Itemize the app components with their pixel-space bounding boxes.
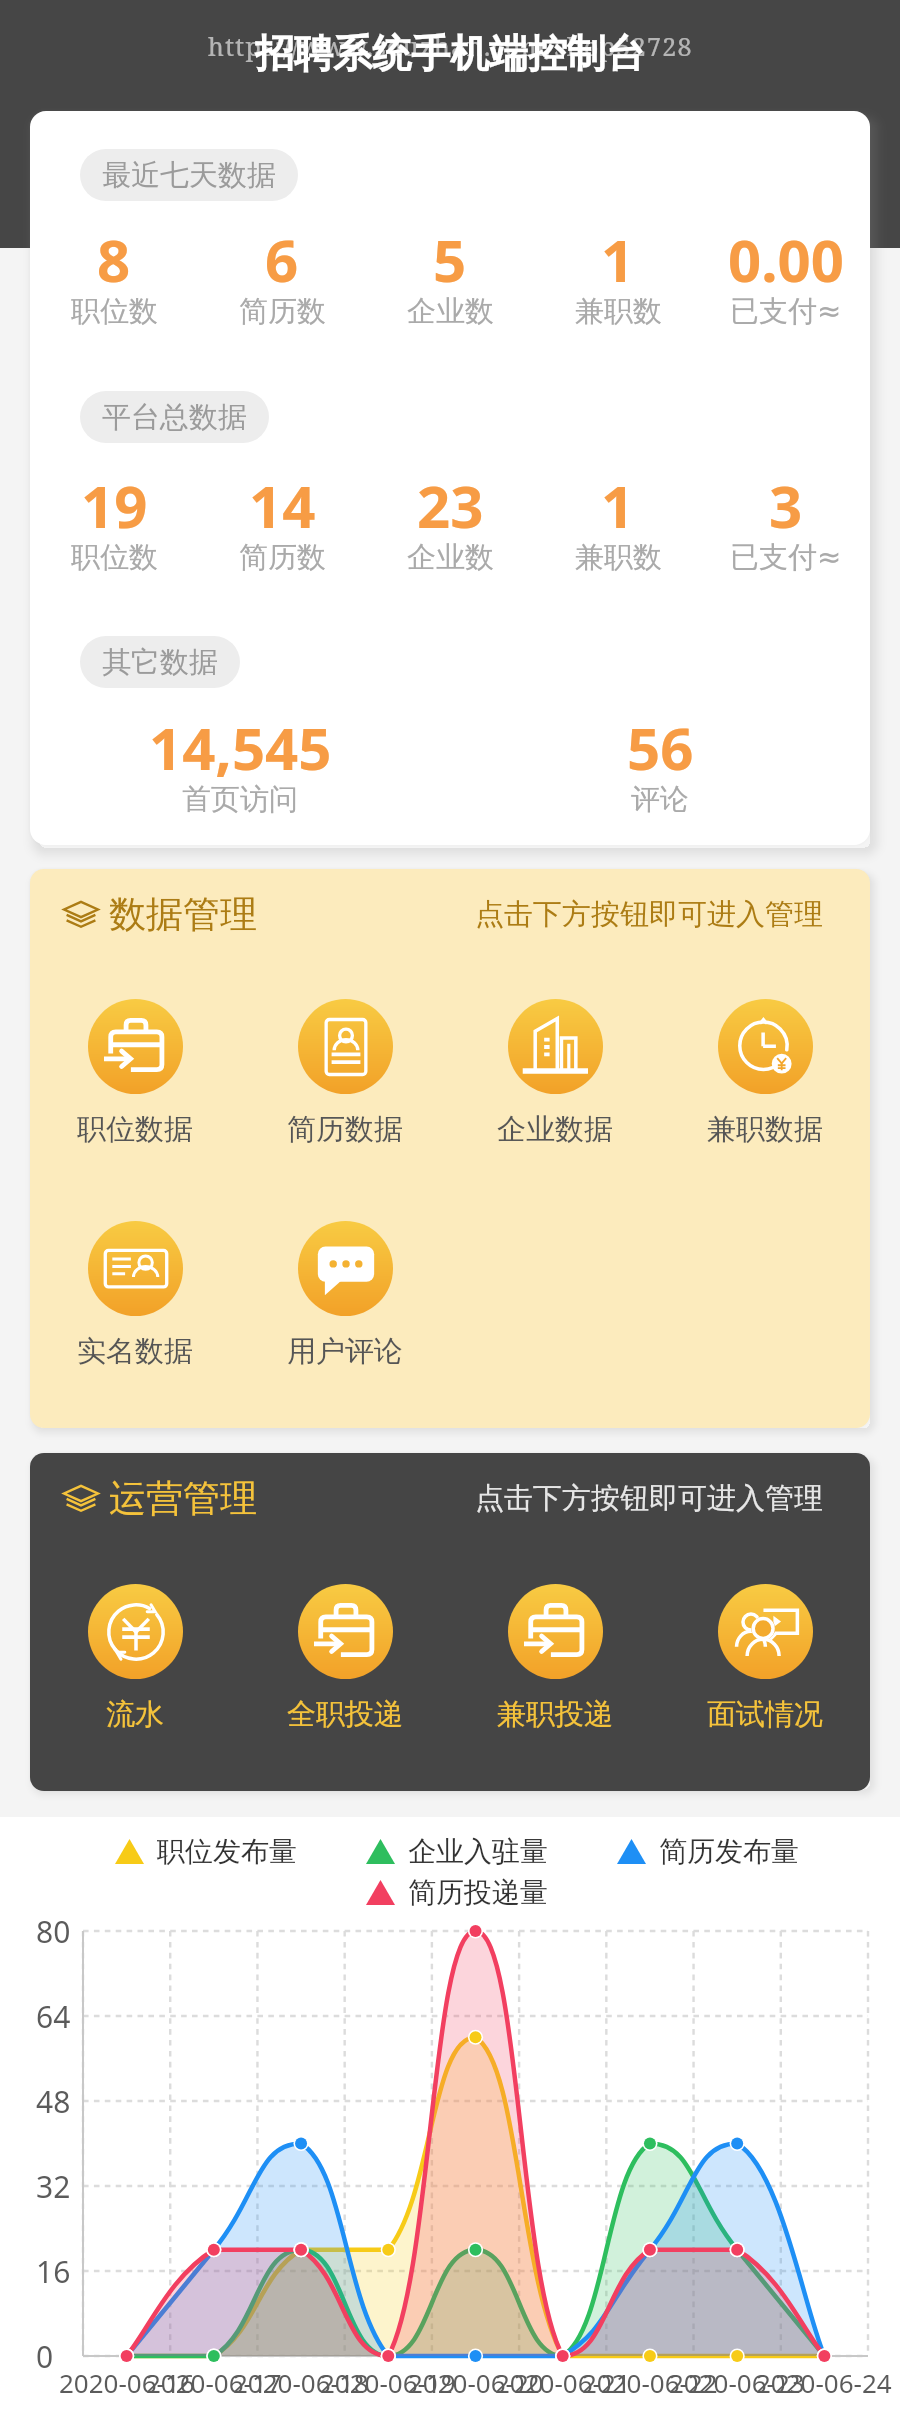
staticText: 6	[265, 220, 299, 299]
staticText: 点击下方按钮即可进入管理	[475, 896, 823, 933]
staticText: 2020-06-17	[146, 2365, 282, 2400]
staticText: 兼职数	[575, 539, 662, 576]
staticText: 平台总数据	[102, 399, 247, 436]
staticText: 2020-06-23	[669, 2365, 805, 2400]
staticText: 企业入驻量	[408, 1834, 548, 1869]
staticText: 3	[769, 466, 803, 545]
staticText: 兼职投递	[497, 1696, 613, 1733]
button[interactable]: 用户评论	[240, 1221, 450, 1370]
staticText: 简历数据	[287, 1111, 403, 1148]
staticText: 2020-06-19	[320, 2365, 456, 2400]
staticText: 首页访问	[182, 781, 298, 818]
button[interactable]: 兼职数据	[660, 999, 870, 1148]
staticText: 1	[601, 466, 635, 545]
staticText: 其它数据	[102, 644, 218, 681]
staticText: 职位数	[71, 293, 158, 330]
staticText: 职位数	[71, 539, 158, 576]
staticText: 最近七天数据	[102, 157, 276, 194]
staticText: 招聘系统手机端控制台	[255, 29, 645, 78]
staticText: 48	[36, 2081, 71, 2122]
staticText: 已支付≈	[730, 293, 842, 330]
staticText: 32	[36, 2166, 71, 2207]
staticText: 14	[249, 466, 316, 545]
staticText: 14,545	[149, 708, 332, 787]
button[interactable]: 职位数据	[30, 999, 240, 1148]
staticText: 2020-06-24	[756, 2365, 892, 2400]
staticText: 兼职数据	[707, 1111, 823, 1148]
staticText: 简历数	[239, 293, 326, 330]
staticText: 数据管理	[109, 891, 257, 938]
staticText: 实名数据	[77, 1333, 193, 1370]
staticText: 简历发布量	[659, 1834, 799, 1869]
staticText: https://www.souzhan.com/shop52728	[208, 29, 693, 63]
staticText: 23	[417, 466, 484, 545]
staticText: 简历数	[239, 539, 326, 576]
staticText: 19	[81, 466, 148, 545]
staticText: 企业数	[407, 293, 494, 330]
button[interactable]: 全职投递	[240, 1584, 450, 1733]
staticText: 1	[601, 220, 635, 299]
button[interactable]: 简历数据	[240, 999, 450, 1148]
staticText: 职位发布量	[157, 1834, 297, 1869]
staticText: 2020-06-22	[582, 2365, 718, 2400]
staticText: 2020-06-21	[495, 2365, 631, 2400]
staticText: 2020-06-20	[408, 2365, 544, 2400]
staticText: 企业数	[407, 539, 494, 576]
staticText: 56	[627, 708, 694, 787]
button[interactable]: 企业数据	[450, 999, 660, 1148]
staticText: 16	[36, 2251, 71, 2292]
button[interactable]: 兼职投递	[450, 1584, 660, 1733]
button[interactable]: 流水	[30, 1584, 240, 1733]
staticText: 0.00	[728, 220, 844, 299]
staticText: 简历投递量	[408, 1875, 548, 1910]
staticText: 5	[433, 220, 467, 299]
staticText: 面试情况	[707, 1696, 823, 1733]
staticText: 评论	[631, 781, 689, 818]
staticText: 兼职数	[575, 293, 662, 330]
staticText: 企业数据	[497, 1111, 613, 1148]
staticText: 2020-06-16	[59, 2365, 195, 2400]
staticText: 2020-06-18	[233, 2365, 369, 2400]
staticText: 运营管理	[109, 1475, 257, 1522]
button[interactable]: 实名数据	[30, 1221, 240, 1370]
staticText: 已支付≈	[730, 539, 842, 576]
staticText: 64	[36, 1996, 71, 2037]
staticText: 0	[36, 2336, 54, 2377]
staticText: 8	[97, 220, 131, 299]
staticText: 80	[36, 1911, 71, 1952]
staticText: 全职投递	[287, 1696, 403, 1733]
staticText: 点击下方按钮即可进入管理	[475, 1480, 823, 1517]
staticText: 流水	[106, 1696, 164, 1733]
staticText: 职位数据	[77, 1111, 193, 1148]
staticText: 用户评论	[287, 1333, 403, 1370]
button[interactable]: 面试情况	[660, 1584, 870, 1733]
